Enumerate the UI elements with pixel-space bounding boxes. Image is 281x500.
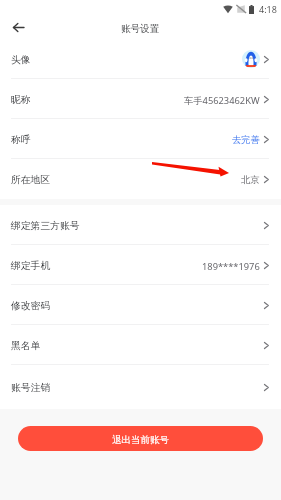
staticText: 修改密码 [11, 300, 51, 312]
button[interactable]: Back [8, 17, 28, 37]
button[interactable]: 黑名单 [0, 325, 281, 365]
staticText: 账号注销 [11, 382, 51, 394]
staticText: 昵称 [11, 94, 31, 106]
staticText: 绑定手机 [11, 260, 51, 272]
button[interactable]: 修改密码 [0, 285, 281, 325]
button[interactable]: 绑定手机 [0, 245, 281, 285]
staticText: 车手45623462KW [184, 94, 260, 107]
staticText: 189****1976 [202, 260, 260, 273]
staticText: 北京 [241, 174, 260, 186]
staticText: 头像 [11, 54, 31, 66]
staticText: 账号设置 [121, 23, 160, 35]
button[interactable]: 账号注销 [0, 365, 281, 409]
staticText: 去完善 [232, 134, 260, 146]
button[interactable]: 昵称 [0, 79, 281, 119]
staticText: 绑定第三方账号 [11, 220, 80, 232]
staticText: 黑名单 [11, 340, 41, 352]
button[interactable]: 绑定第三方账号 [0, 205, 281, 245]
staticText: 4:18 [259, 3, 277, 15]
button[interactable]: 称呼 [0, 119, 281, 159]
staticText: 所在地区 [11, 174, 51, 186]
staticText: 称呼 [11, 134, 31, 146]
button[interactable]: 头像 [0, 39, 281, 79]
staticText: 退出当前账号 [112, 434, 169, 446]
button[interactable]: 所在地区 [0, 159, 281, 199]
button[interactable]: 退出当前账号 [18, 426, 263, 451]
